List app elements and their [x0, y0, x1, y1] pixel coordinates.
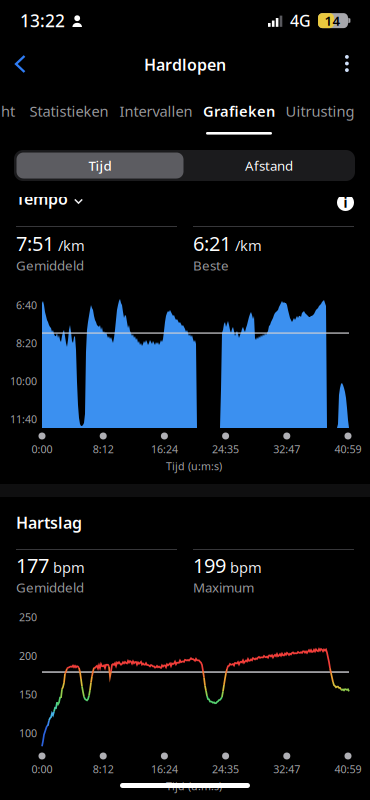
staticText: 0:00 — [31, 762, 52, 776]
staticText: 100 — [19, 726, 37, 740]
staticText: 250 — [19, 610, 37, 624]
staticText: 40:59 — [334, 762, 361, 776]
staticText: ht — [1, 101, 15, 121]
staticText: 8:12 — [93, 442, 114, 456]
staticText: Uitrusting — [285, 101, 354, 121]
staticText: 40:59 — [334, 442, 361, 456]
staticText: 150 — [19, 687, 37, 702]
button[interactable]: Tijd — [16, 152, 183, 178]
staticText: Afstand — [245, 157, 293, 174]
staticText: 14 — [324, 12, 340, 29]
button[interactable]: Statistieken — [26, 88, 112, 134]
button[interactable]: Afstand — [185, 152, 352, 178]
staticText: 199 — [193, 552, 226, 579]
staticText: Intervallen — [119, 101, 192, 121]
staticText: i — [343, 194, 347, 211]
staticText: Statistieken — [29, 101, 108, 121]
staticText: 177 — [16, 552, 49, 579]
staticText: /km — [58, 236, 85, 255]
staticText: 11:40 — [10, 412, 37, 426]
staticText: 13:22 — [20, 9, 65, 32]
staticText: Maximum — [193, 579, 254, 596]
staticText: 0:00 — [31, 442, 52, 456]
staticText: Hartslag — [16, 512, 82, 533]
staticText: Gemiddeld — [16, 257, 84, 274]
staticText: 6:40 — [16, 298, 37, 312]
staticText: 16:24 — [151, 442, 178, 456]
staticText: Tijd (u:m:s) — [166, 459, 222, 473]
staticText: 10:00 — [10, 374, 37, 388]
button[interactable]: Info — [337, 194, 354, 211]
staticText: 8:12 — [93, 762, 114, 776]
button[interactable]: Back — [0, 42, 41, 86]
staticText: 16:24 — [151, 762, 178, 776]
staticText: Tijd (u:m:s) — [166, 779, 222, 793]
staticText: 32:47 — [273, 442, 300, 456]
staticText: 6:21 — [193, 230, 231, 257]
staticText: bpm — [230, 558, 262, 577]
staticText: 24:35 — [212, 762, 239, 776]
staticText: 32:47 — [273, 762, 300, 776]
button[interactable]: Uitrusting — [277, 88, 363, 134]
button[interactable]: More options — [329, 42, 370, 86]
staticText: 200 — [19, 649, 37, 663]
staticText: Beste — [193, 257, 229, 274]
staticText: bpm — [53, 558, 85, 577]
staticText: 4G — [290, 10, 311, 31]
staticText: /km — [235, 236, 262, 255]
staticText: 8:20 — [16, 336, 37, 350]
button[interactable]: ht — [0, 88, 51, 134]
button[interactable]: Intervallen — [113, 88, 199, 134]
staticText: Tempo — [16, 188, 68, 209]
staticText: 24:35 — [212, 442, 239, 456]
staticText: Tijd — [88, 157, 111, 174]
staticText: 7:51 — [16, 230, 54, 257]
staticText: Grafieken — [203, 101, 275, 121]
staticText: Hardlopen — [144, 54, 226, 75]
staticText: Gemiddeld — [16, 579, 84, 596]
button[interactable]: Grafieken — [196, 88, 282, 134]
button[interactable]: Tempo — [16, 188, 83, 209]
